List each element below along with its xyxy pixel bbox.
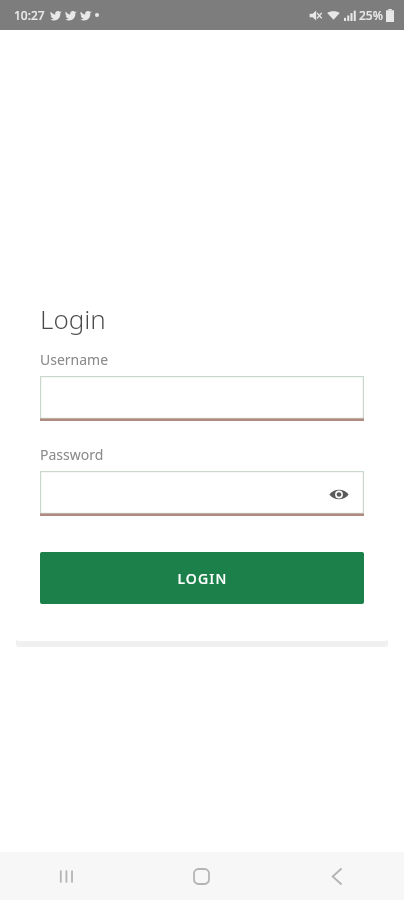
staticText: 25% [359, 7, 383, 23]
staticText: 10:27 [14, 7, 45, 23]
staticText: Username [40, 350, 109, 369]
button[interactable]: Recents [0, 852, 134, 900]
staticText: Login [40, 301, 106, 336]
staticText: LOGIN [177, 569, 228, 588]
button[interactable]: Show password [40, 471, 364, 516]
button[interactable]: Home [134, 852, 269, 900]
button[interactable]: Show password [326, 481, 352, 507]
button[interactable]: LOGIN [40, 552, 364, 604]
staticText: Password [40, 445, 104, 464]
button[interactable] [40, 376, 364, 421]
button[interactable]: Back [269, 852, 404, 900]
